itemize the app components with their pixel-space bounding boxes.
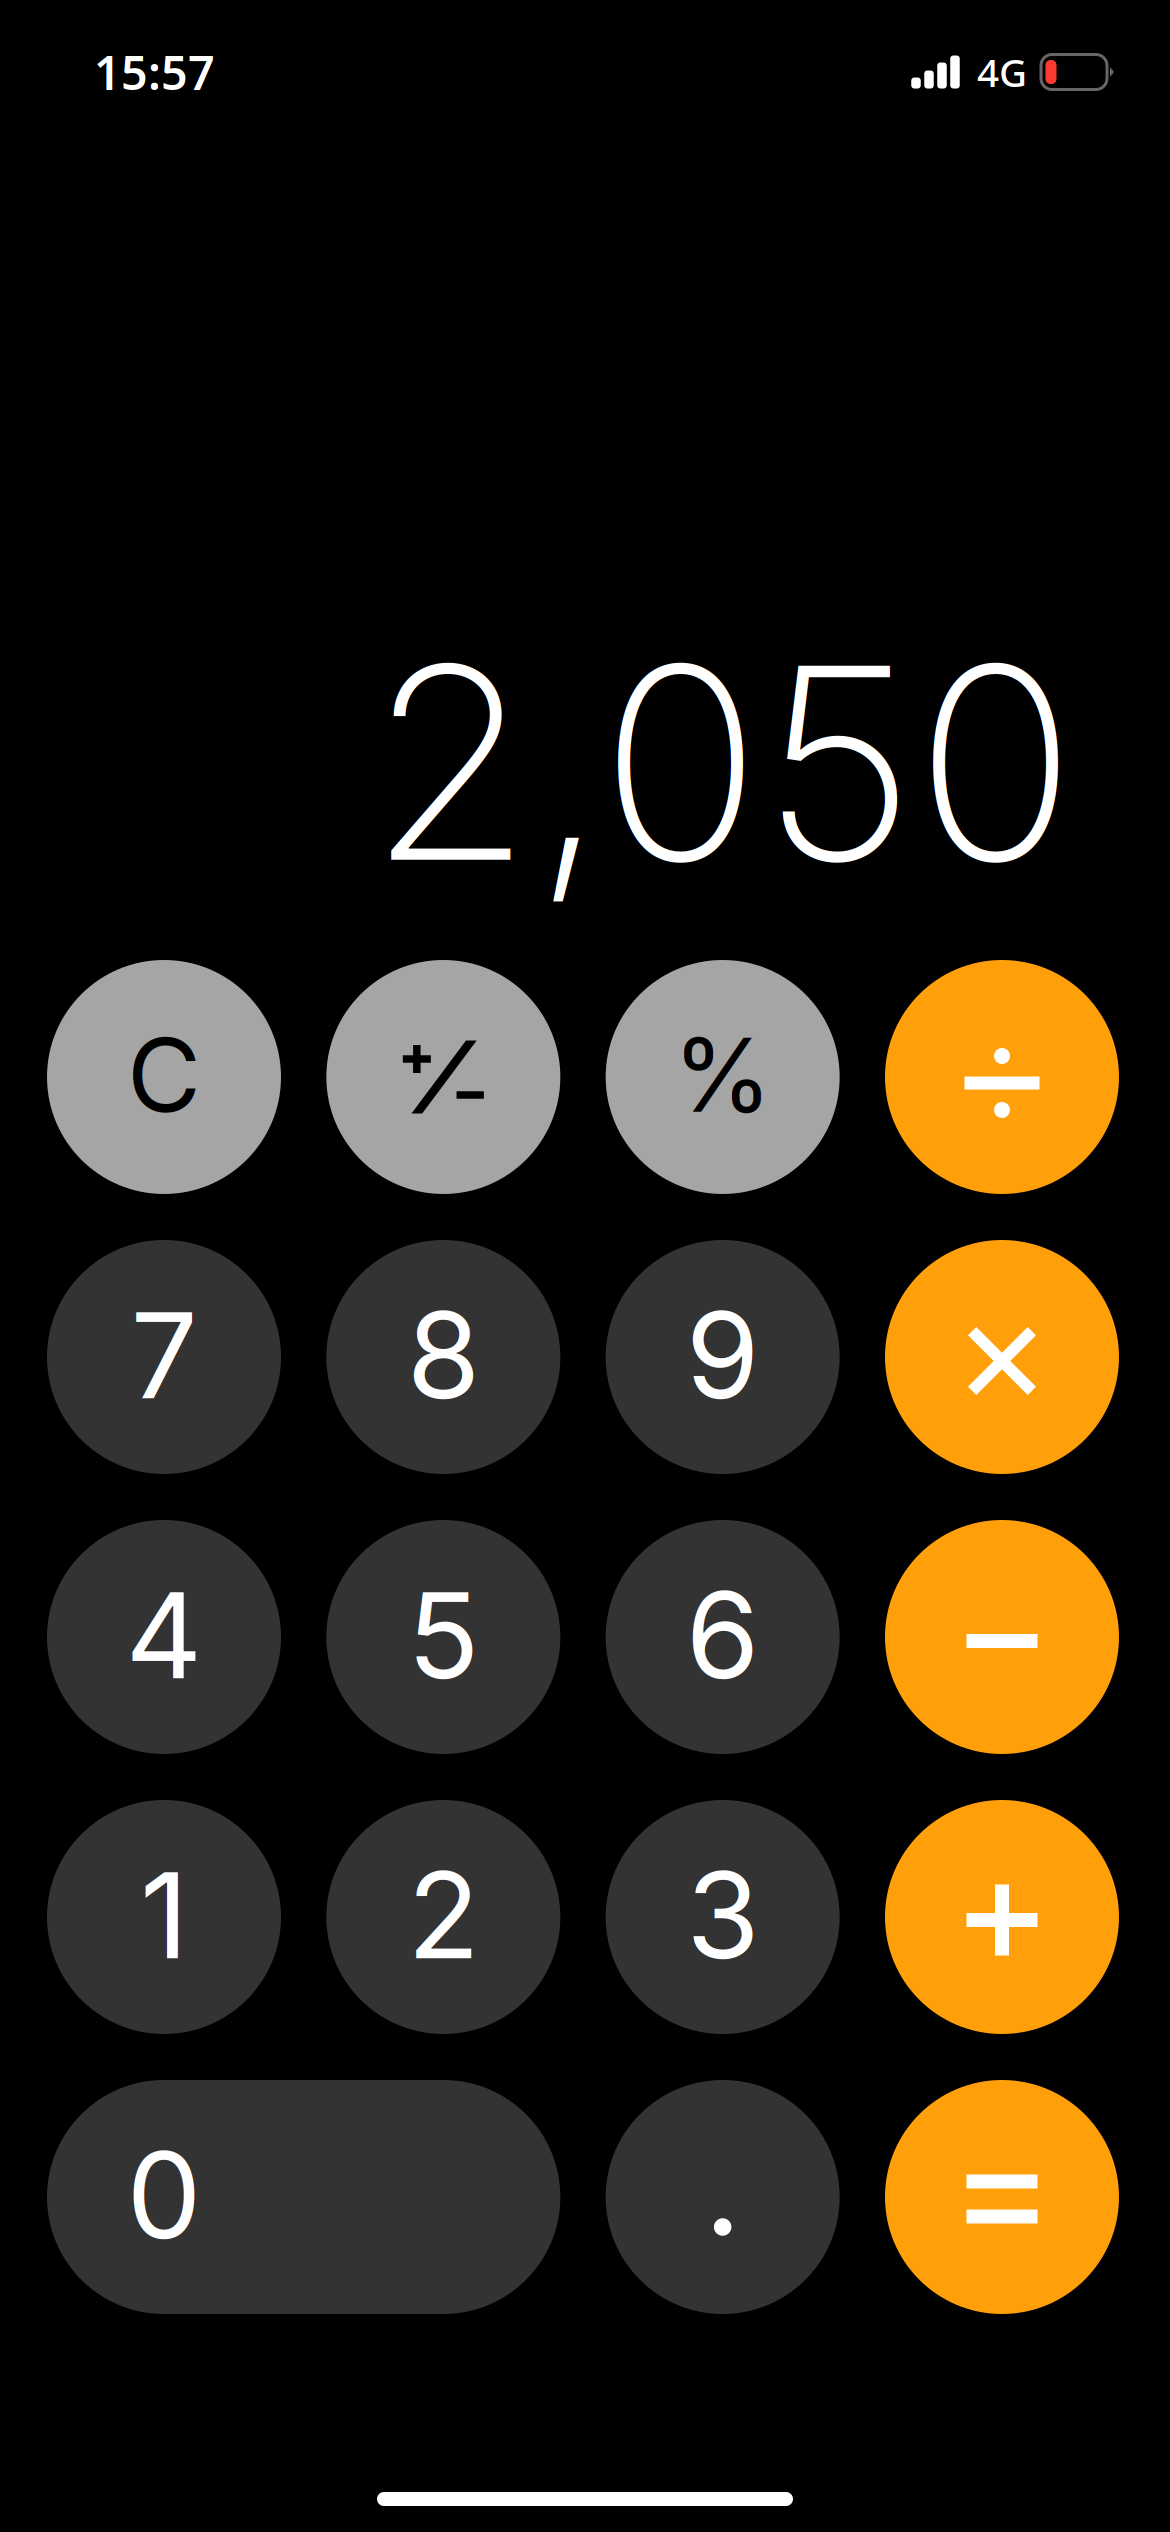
staticText: 6 xyxy=(686,1563,760,1707)
staticText: 2 xyxy=(407,1843,479,1987)
staticText: 2,050 xyxy=(368,601,1076,924)
button[interactable]: Plus xyxy=(885,1800,1119,2034)
staticText: 0 xyxy=(126,2123,201,2267)
button[interactable] xyxy=(606,1800,840,2034)
button[interactable]: Equals xyxy=(885,2080,1119,2314)
staticText: 1 xyxy=(140,1843,188,1987)
button[interactable]: Minus xyxy=(885,1520,1119,1754)
button[interactable] xyxy=(326,1520,560,1754)
staticText: 4G xyxy=(977,46,1027,98)
button[interactable] xyxy=(47,1520,281,1754)
button[interactable] xyxy=(47,2080,560,2314)
staticText: 5 xyxy=(407,1563,479,1707)
button[interactable]: Divide xyxy=(885,960,1119,1194)
staticText: 15:57 xyxy=(94,41,215,103)
staticText: C xyxy=(127,1014,201,1136)
button[interactable] xyxy=(606,1520,840,1754)
button[interactable]: Decimal point xyxy=(606,2080,840,2314)
button[interactable] xyxy=(606,1240,840,1474)
button[interactable]: Clear xyxy=(47,960,281,1194)
button[interactable] xyxy=(47,1800,281,2034)
staticText: 9 xyxy=(686,1283,760,1427)
button[interactable] xyxy=(47,1240,281,1474)
button[interactable] xyxy=(326,1800,560,2034)
button[interactable]: Percent xyxy=(606,960,840,1194)
staticText: 3 xyxy=(686,1843,759,1987)
staticText: 4 xyxy=(125,1563,202,1707)
staticText: % xyxy=(673,1014,773,1136)
staticText: 8 xyxy=(407,1283,480,1427)
staticText: 7 xyxy=(130,1283,197,1427)
button[interactable]: Multiply xyxy=(885,1240,1119,1474)
button[interactable]: Change sign xyxy=(326,960,560,1194)
button[interactable] xyxy=(326,1240,560,1474)
